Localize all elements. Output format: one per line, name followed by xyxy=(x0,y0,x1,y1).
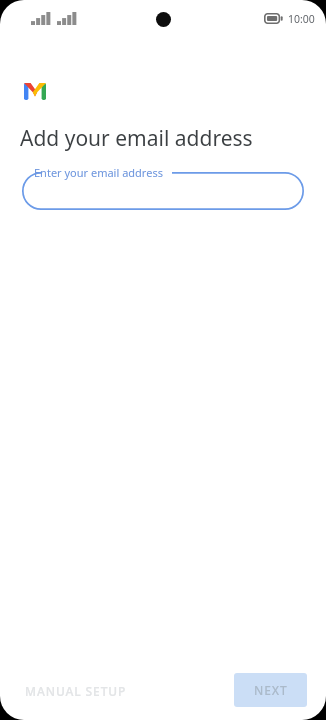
staticText: 10:00 xyxy=(288,12,315,26)
button[interactable]: NEXT xyxy=(234,673,307,707)
staticText: Enter your email address xyxy=(34,165,163,180)
staticText: NEXT xyxy=(254,682,288,698)
staticText: MANUAL SETUP xyxy=(25,683,127,699)
button[interactable]: Enter your email address xyxy=(22,172,304,210)
staticText: Add your email address xyxy=(20,124,253,153)
button[interactable]: MANUAL SETUP xyxy=(13,675,139,707)
